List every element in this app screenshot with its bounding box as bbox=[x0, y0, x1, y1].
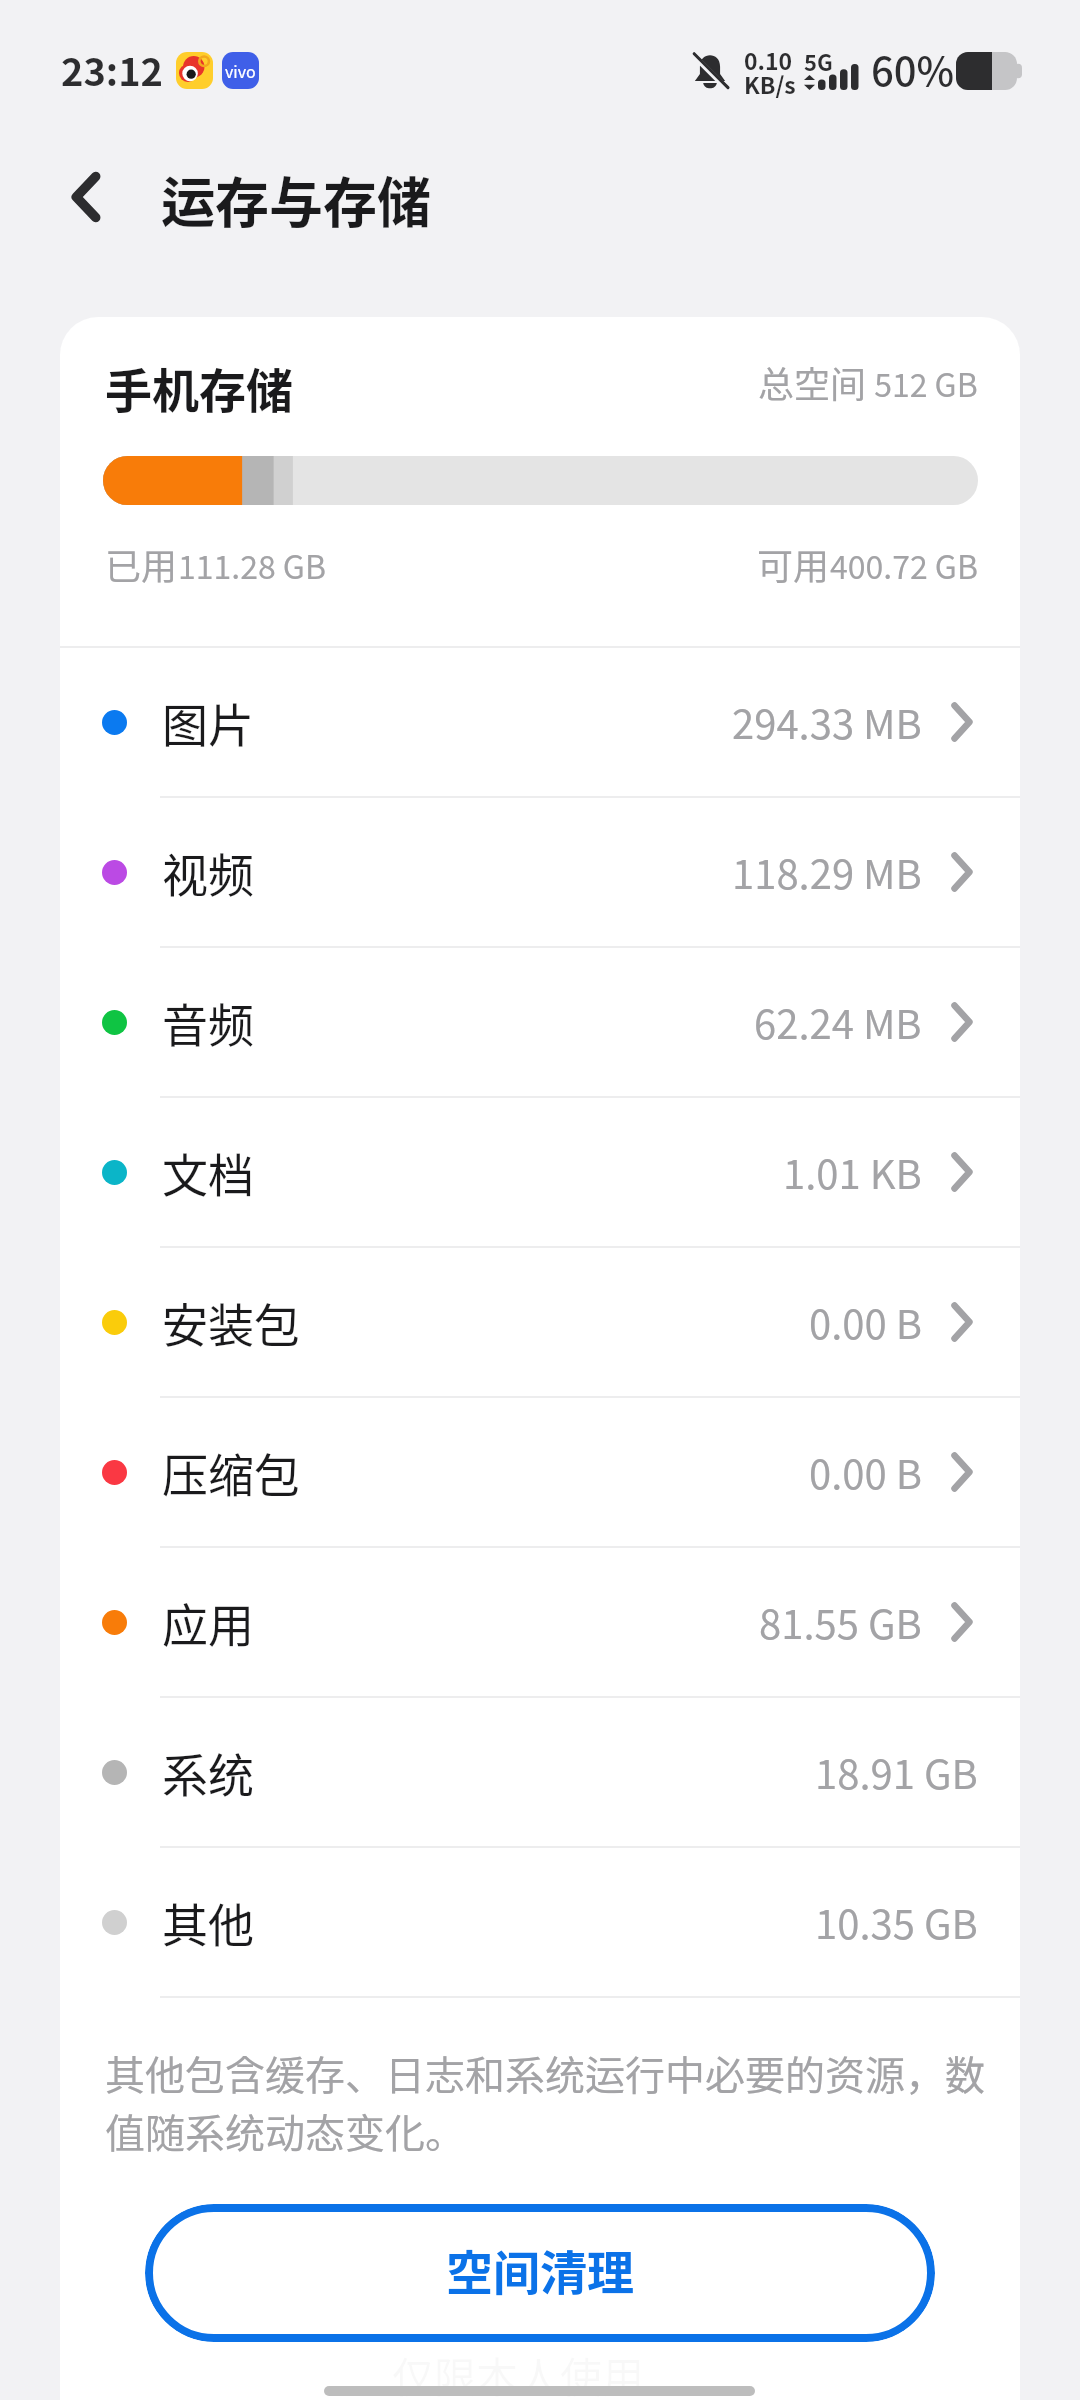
button[interactable]: Back bbox=[51, 162, 121, 232]
staticText: 81.55 GB bbox=[759, 1593, 922, 1651]
staticText: 62.24 MB bbox=[754, 993, 922, 1051]
button[interactable]: 音频 bbox=[60, 948, 1020, 1096]
staticText: 5G bbox=[804, 45, 833, 77]
staticText: 已用 bbox=[105, 538, 178, 590]
staticText: 111.28 GB bbox=[178, 542, 326, 588]
staticText: 压缩包 bbox=[162, 1439, 300, 1506]
staticText: 系统 bbox=[162, 1739, 254, 1806]
button[interactable]: 文档 bbox=[60, 1098, 1020, 1246]
staticText: 仅限本人使用 bbox=[392, 2344, 645, 2400]
button[interactable]: 图片 bbox=[60, 648, 1020, 796]
staticText: 23:12 bbox=[61, 42, 164, 97]
button[interactable]: 压缩包 bbox=[60, 1398, 1020, 1546]
staticText: 安装包 bbox=[162, 1289, 300, 1356]
button[interactable]: 其他 bbox=[60, 1848, 1020, 1996]
staticText: 10.35 GB bbox=[815, 1893, 978, 1951]
staticText: 图片 bbox=[162, 689, 254, 756]
button[interactable]: 安装包 bbox=[60, 1248, 1020, 1396]
button[interactable]: 空间清理 bbox=[145, 2204, 935, 2342]
staticText: 文档 bbox=[162, 1139, 254, 1206]
button[interactable]: 应用 bbox=[60, 1548, 1020, 1696]
staticText: 应用 bbox=[162, 1589, 254, 1656]
staticText: 其他 bbox=[162, 1889, 254, 1956]
staticText: 运存与存储 bbox=[161, 160, 431, 238]
staticText: 0.10 bbox=[744, 43, 793, 76]
staticText: 总空间 bbox=[758, 356, 867, 408]
staticText: vivo bbox=[225, 59, 256, 82]
staticText: 294.33 MB bbox=[732, 693, 922, 751]
button[interactable]: 系统 bbox=[60, 1698, 1020, 1846]
staticText: KB/s bbox=[744, 67, 796, 100]
staticText: 其他包含缓存、日志和系统运行中必要的资源，数值随系统动态变化。 bbox=[105, 2044, 985, 2160]
staticText: 400.72 GB bbox=[830, 542, 978, 588]
staticText: 1.01 KB bbox=[783, 1143, 922, 1201]
button[interactable]: 视频 bbox=[60, 798, 1020, 946]
staticText: 118.29 MB bbox=[732, 843, 922, 901]
staticText: 18.91 GB bbox=[815, 1743, 978, 1801]
staticText: 可用 bbox=[757, 538, 830, 590]
staticText: 0.00 B bbox=[809, 1443, 922, 1501]
staticText: 音频 bbox=[162, 989, 254, 1056]
staticText: 手机存储 bbox=[105, 353, 293, 421]
staticText: 512 GB bbox=[867, 360, 978, 406]
staticText: 60% bbox=[871, 40, 955, 98]
staticText: 空间清理 bbox=[446, 2235, 634, 2303]
staticText: 视频 bbox=[162, 839, 254, 906]
staticText: 0.00 B bbox=[809, 1293, 922, 1351]
